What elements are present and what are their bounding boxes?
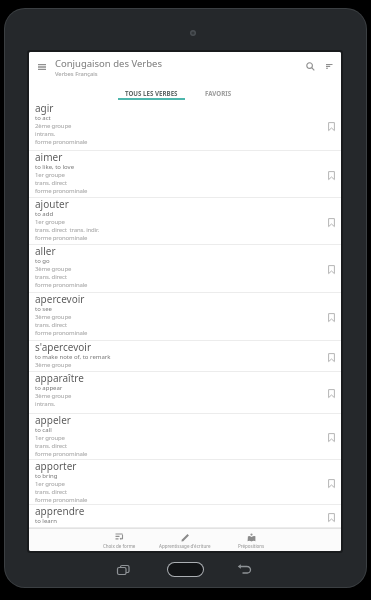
staticText: 3ème groupe xyxy=(35,265,72,273)
button[interactable]: apprendre xyxy=(29,505,341,528)
button[interactable]: ajouter xyxy=(29,198,341,245)
staticText: trans. direct trans. indir. xyxy=(35,226,99,234)
staticText: 3ème groupe xyxy=(35,361,72,369)
staticText: to make note of, to remark xyxy=(35,353,111,361)
button[interactable] xyxy=(320,57,338,75)
staticText: apporter xyxy=(35,459,77,473)
staticText: to act xyxy=(35,114,51,122)
staticText: apparaître xyxy=(35,371,84,385)
staticText: 2ème groupe xyxy=(35,122,72,130)
staticText: apercevoir xyxy=(35,292,85,306)
staticText: to call xyxy=(35,426,52,434)
staticText: 1er groupe xyxy=(35,434,65,442)
staticText: forme pronominale xyxy=(35,281,88,289)
button[interactable]: apporter xyxy=(29,460,341,505)
staticText: Conjugaison des Verbes xyxy=(55,57,162,70)
button[interactable]: s'apercevoir xyxy=(29,341,341,372)
button[interactable]: Prépositions xyxy=(218,529,284,551)
button[interactable]: apparaître xyxy=(29,372,341,414)
staticText: ajouter xyxy=(35,197,69,211)
staticText: to add xyxy=(35,210,54,218)
staticText: to learn xyxy=(35,517,57,525)
staticText: forme pronominale xyxy=(35,496,88,503)
staticText: intrans. xyxy=(35,130,56,138)
staticText: to appear xyxy=(35,384,63,392)
button[interactable] xyxy=(33,58,50,75)
staticText: to bring xyxy=(35,472,58,480)
button[interactable]: apercevoir xyxy=(29,293,341,341)
staticText: 1er groupe xyxy=(35,171,65,179)
staticText: Apprentissage d'écriture xyxy=(159,543,211,549)
button[interactable]: aimer xyxy=(29,151,341,198)
button[interactable]: agir xyxy=(29,100,341,151)
staticText: trans. direct xyxy=(35,273,67,281)
staticText: Choix de forme xyxy=(103,543,136,549)
staticText: forme pronominale xyxy=(35,450,88,458)
button[interactable]: TOUS LES VERBES xyxy=(118,85,185,100)
button[interactable]: Apprentissage d'écriture xyxy=(152,529,218,551)
staticText: apprendre xyxy=(35,504,85,518)
staticText: to like, to love xyxy=(35,163,75,171)
button[interactable]: aller xyxy=(29,245,341,293)
staticText: Verbes Français xyxy=(55,70,98,78)
button[interactable]: Choix de forme xyxy=(86,529,152,551)
staticText: forme pronominale xyxy=(35,187,88,195)
staticText: 1er groupe xyxy=(35,480,65,488)
staticText: trans. direct xyxy=(35,488,67,496)
staticText: trans. direct xyxy=(35,179,67,187)
button[interactable] xyxy=(167,562,204,577)
staticText: 3ème groupe xyxy=(35,313,72,321)
staticText: agir xyxy=(35,101,54,115)
button[interactable] xyxy=(301,57,319,75)
staticText: intrans. xyxy=(35,400,56,408)
staticText: TOUS LES VERBES xyxy=(125,89,178,97)
staticText: FAVORIS xyxy=(205,89,232,97)
staticText: forme pronominale xyxy=(35,138,88,146)
button[interactable]: FAVORIS xyxy=(185,85,252,100)
staticText: Prépositions xyxy=(238,543,265,549)
button[interactable] xyxy=(116,564,132,578)
staticText: appeler xyxy=(35,413,71,427)
staticText: to see xyxy=(35,305,52,313)
staticText: forme pronominale xyxy=(35,234,88,242)
staticText: forme pronominale xyxy=(35,329,88,337)
staticText: 1er groupe xyxy=(35,218,65,226)
staticText: aller xyxy=(35,244,56,258)
staticText: trans. direct xyxy=(35,321,67,329)
staticText: 3ème groupe xyxy=(35,392,72,400)
staticText: aimer xyxy=(35,150,63,164)
button[interactable] xyxy=(237,564,253,576)
staticText: s'apercevoir xyxy=(35,340,92,354)
staticText: trans. direct xyxy=(35,442,67,450)
button[interactable]: appeler xyxy=(29,414,341,460)
staticText: to go xyxy=(35,257,50,265)
